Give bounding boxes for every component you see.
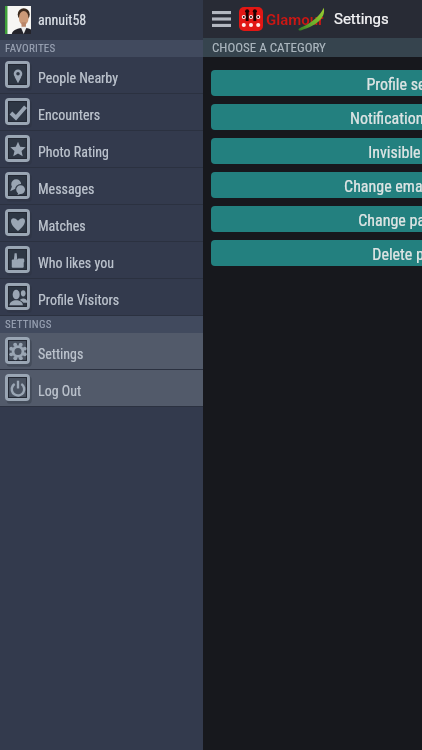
- button[interactable]: Delete profile: [211, 240, 422, 266]
- button[interactable]: Change email address: [211, 172, 422, 198]
- staticText: Settings: [334, 10, 389, 28]
- button[interactable]: Invisible mode: [211, 138, 422, 164]
- button[interactable]: Open navigation menu: [203, 0, 239, 38]
- staticText: Settings: [38, 346, 84, 362]
- staticText: Profile Visitors: [38, 292, 120, 308]
- staticText: Delete profile: [372, 245, 422, 264]
- button[interactable]: Change password: [211, 206, 422, 232]
- button[interactable]: Profile Visitors: [0, 279, 203, 316]
- button[interactable]: Settings: [0, 333, 203, 370]
- staticText: Encounters: [38, 107, 101, 123]
- button[interactable]: Notification settings: [211, 104, 422, 130]
- staticText: Invisible mode: [368, 143, 422, 162]
- button[interactable]: Who likes you: [0, 242, 203, 279]
- staticText: SETTINGS: [5, 318, 52, 331]
- button[interactable]: Messages: [0, 168, 203, 205]
- staticText: CHOOSE A CATEGORY: [212, 40, 326, 55]
- staticText: Change password: [358, 211, 422, 230]
- staticText: People Nearby: [38, 70, 119, 86]
- staticText: Log Out: [38, 383, 82, 399]
- staticText: Change email address: [344, 177, 422, 196]
- staticText: Matches: [38, 218, 86, 234]
- button[interactable]: Encounters: [0, 94, 203, 131]
- button[interactable]: Photo Rating: [0, 131, 203, 168]
- staticText: Notification settings: [350, 109, 422, 128]
- staticText: annuit58: [38, 12, 87, 28]
- button[interactable]: annuit58: [0, 0, 203, 40]
- staticText: Profile settings: [366, 75, 422, 94]
- staticText: FAVORITES: [5, 42, 56, 55]
- staticText: Glamour: [266, 11, 324, 29]
- staticText: Photo Rating: [38, 144, 109, 160]
- button[interactable]: Log Out: [0, 370, 203, 407]
- button[interactable]: Profile settings: [211, 70, 422, 96]
- button[interactable]: Matches: [0, 205, 203, 242]
- staticText: Messages: [38, 181, 95, 197]
- staticText: Who likes you: [38, 255, 114, 271]
- button[interactable]: People Nearby: [0, 57, 203, 94]
